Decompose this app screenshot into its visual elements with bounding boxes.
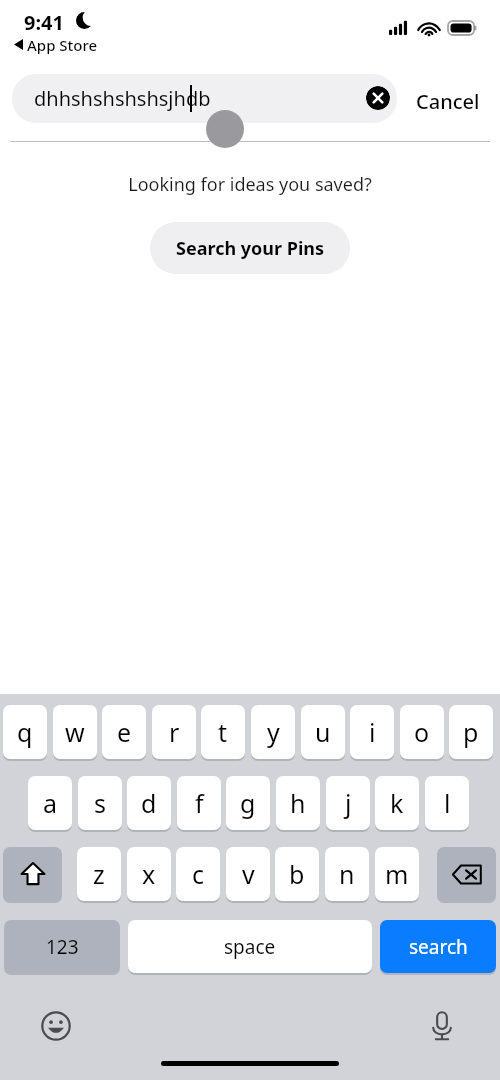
- button[interactable]: b: [275, 847, 319, 901]
- staticText: y: [267, 715, 280, 749]
- staticText: u: [315, 715, 331, 749]
- button[interactable]: Dictation: [424, 1008, 460, 1044]
- button[interactable]: f: [177, 776, 221, 830]
- button[interactable]: l: [425, 776, 469, 830]
- staticText: 123: [46, 934, 79, 960]
- staticText: s: [94, 786, 106, 820]
- staticText: space: [224, 934, 276, 960]
- button[interactable]: r: [152, 705, 196, 759]
- staticText: Looking for ideas you saved?: [128, 172, 372, 197]
- staticText: v: [242, 857, 255, 891]
- staticText: a: [43, 786, 58, 820]
- button[interactable]: Clear text: [366, 86, 390, 110]
- staticText: o: [414, 715, 430, 749]
- staticText: k: [390, 786, 404, 820]
- staticText: App Store: [27, 35, 98, 55]
- button[interactable]: m: [375, 847, 419, 901]
- button[interactable]: j: [326, 776, 370, 830]
- staticText: l: [444, 786, 451, 820]
- button[interactable]: n: [325, 847, 369, 901]
- staticText: w: [65, 715, 85, 749]
- staticText: z: [93, 857, 105, 891]
- button[interactable]: z: [77, 847, 121, 901]
- button[interactable]: x: [127, 847, 171, 901]
- staticText: b: [289, 857, 305, 891]
- button[interactable]: e: [102, 705, 146, 759]
- button[interactable]: dhhshshshshsjhdb: [12, 74, 397, 123]
- button[interactable]: w: [53, 705, 97, 759]
- staticText: Search your Pins: [176, 236, 325, 261]
- button[interactable]: g: [226, 776, 270, 830]
- button[interactable]: t: [201, 705, 245, 759]
- button[interactable]: Emoji: [38, 1008, 74, 1044]
- button[interactable]: i: [350, 705, 394, 759]
- button[interactable]: Search your Pins: [150, 222, 350, 274]
- button[interactable]: u: [301, 705, 345, 759]
- button[interactable]: s: [78, 776, 122, 830]
- staticText: e: [117, 715, 132, 749]
- staticText: h: [290, 786, 306, 820]
- button[interactable]: d: [127, 776, 171, 830]
- staticText: r: [169, 715, 180, 749]
- staticText: j: [345, 786, 352, 820]
- staticText: search: [409, 934, 468, 960]
- button[interactable]: Shift: [3, 847, 62, 901]
- staticText: x: [142, 857, 156, 891]
- staticText: n: [339, 857, 355, 891]
- staticText: c: [192, 857, 205, 891]
- staticText: q: [17, 715, 33, 749]
- staticText: i: [369, 715, 376, 749]
- button[interactable]: search: [380, 920, 496, 973]
- staticText: f: [195, 786, 204, 820]
- button[interactable]: a: [28, 776, 72, 830]
- staticText: d: [141, 786, 157, 820]
- staticText: t: [218, 715, 228, 749]
- staticText: dhhshshshshsjhdb: [34, 85, 211, 112]
- button[interactable]: space: [128, 920, 372, 973]
- button[interactable]: App Store: [25, 33, 100, 57]
- button[interactable]: q: [3, 705, 47, 759]
- button[interactable]: k: [375, 776, 419, 830]
- staticText: Cancel: [416, 88, 480, 115]
- button[interactable]: v: [226, 847, 270, 901]
- button[interactable]: Cancel: [412, 84, 484, 119]
- button[interactable]: o: [400, 705, 444, 759]
- button[interactable]: c: [176, 847, 220, 901]
- staticText: g: [240, 786, 256, 820]
- button[interactable]: h: [276, 776, 320, 830]
- staticText: 9:41: [24, 9, 64, 36]
- button[interactable]: 123: [4, 920, 120, 973]
- button[interactable]: y: [251, 705, 295, 759]
- staticText: p: [463, 715, 479, 749]
- button[interactable]: Backspace: [437, 847, 496, 901]
- button[interactable]: p: [449, 705, 493, 759]
- staticText: m: [385, 857, 409, 891]
